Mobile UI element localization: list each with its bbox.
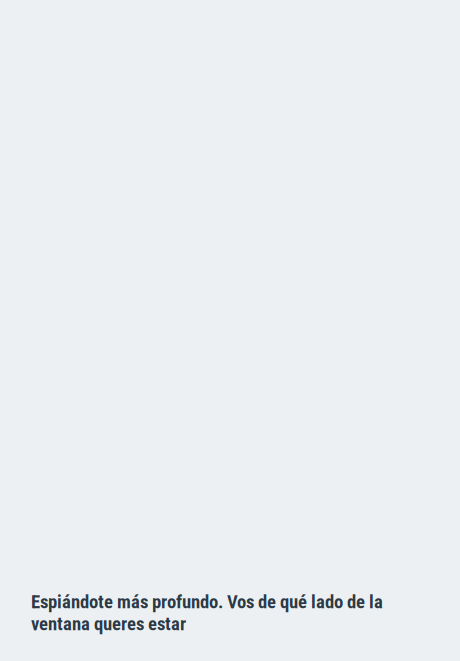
staticText: Espiándote más profundo. Vos de qué lado… xyxy=(31,591,383,635)
